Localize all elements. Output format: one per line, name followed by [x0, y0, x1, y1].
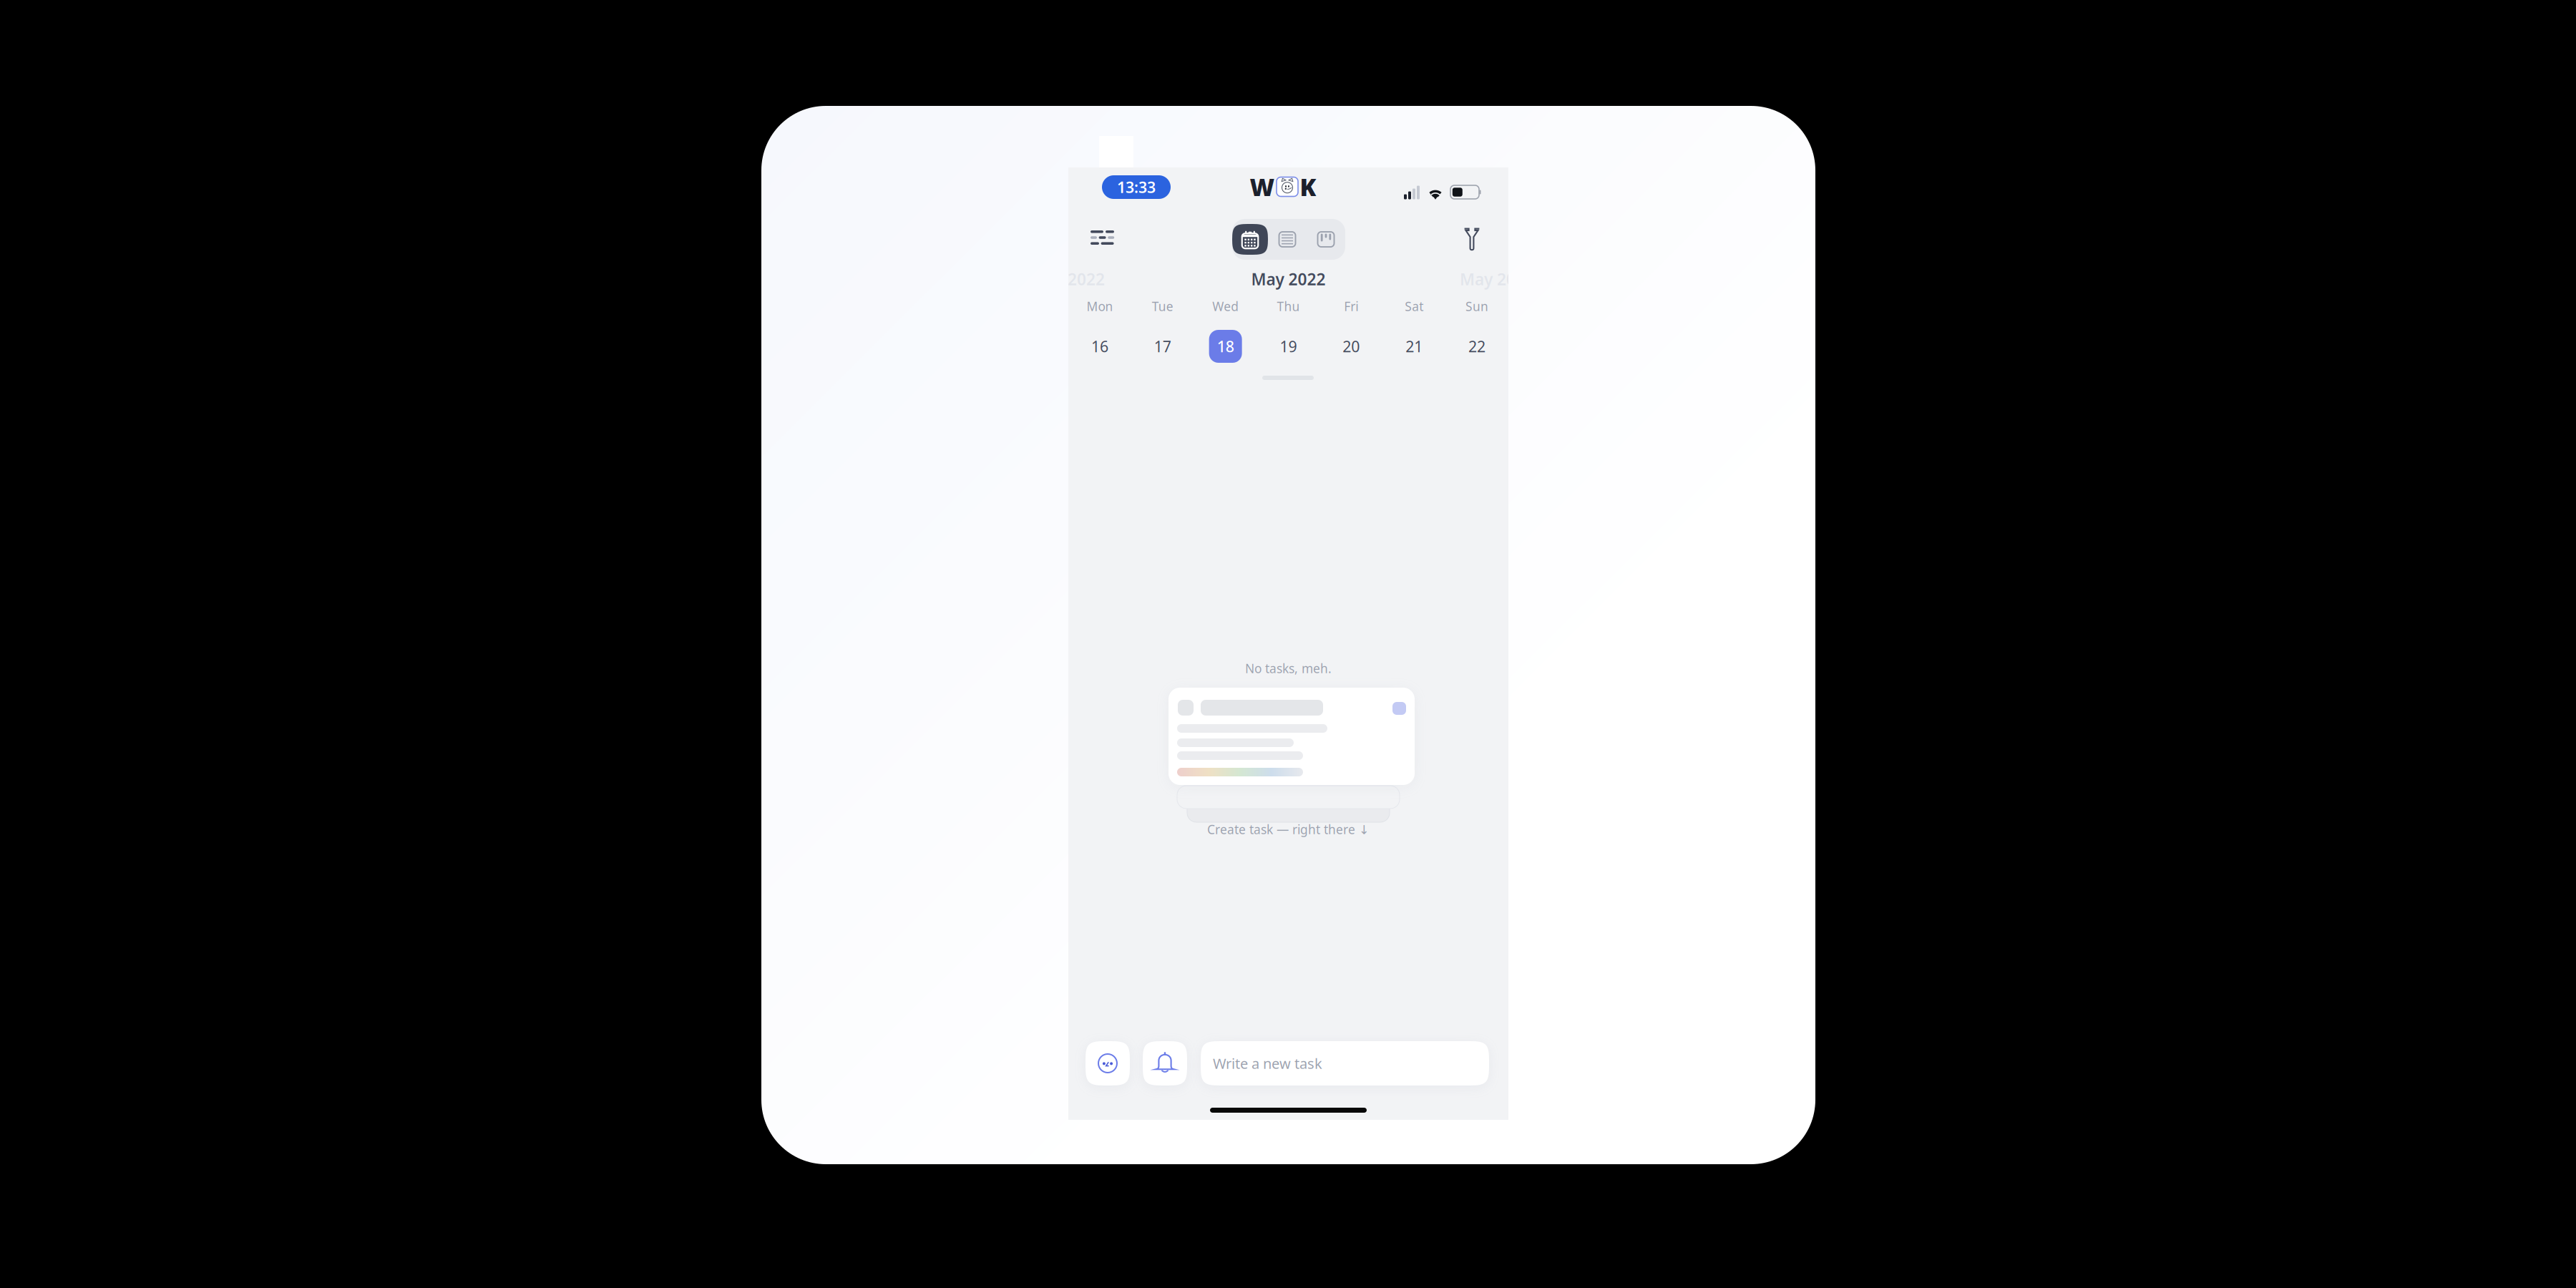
staticText: Mon	[1086, 298, 1113, 314]
button[interactable]: 18	[1194, 329, 1257, 364]
button[interactable]: 17	[1131, 329, 1194, 364]
button[interactable]: Sort and group	[1091, 228, 1116, 247]
staticText: Sat	[1405, 298, 1423, 314]
staticText: 16	[1091, 336, 1108, 356]
button[interactable]: Write a new task	[1201, 1041, 1489, 1085]
button[interactable]: List view	[1268, 224, 1307, 255]
staticText: No tasks, meh.	[1245, 660, 1332, 677]
staticText: Fri	[1344, 298, 1358, 314]
staticText: 19	[1280, 336, 1297, 356]
staticText: Thu	[1277, 298, 1300, 314]
button[interactable]: Board view	[1307, 224, 1345, 255]
button[interactable]: 19	[1257, 329, 1320, 364]
button[interactable]: 22	[1445, 329, 1508, 364]
button[interactable]: 16	[1068, 329, 1131, 364]
button[interactable]: 20	[1320, 329, 1383, 364]
staticText: April 2022	[1027, 268, 1105, 290]
staticText: Wed	[1212, 298, 1239, 314]
staticText: 20	[1343, 336, 1360, 356]
staticText: 17	[1154, 336, 1171, 356]
staticText: 21	[1405, 336, 1423, 356]
button[interactable]: 21	[1383, 329, 1446, 364]
staticText: 18	[1217, 336, 1234, 356]
staticText: Create task — right there ↓	[1207, 821, 1370, 838]
button[interactable]: Calendar view	[1232, 224, 1268, 255]
staticText: May 2022	[1251, 268, 1326, 290]
button[interactable]: Mood	[1085, 1041, 1130, 1085]
staticText: Tue	[1152, 298, 1173, 314]
staticText: Sun	[1466, 298, 1488, 314]
staticText: 13:33	[1117, 177, 1156, 197]
staticText: Write a new task	[1213, 1054, 1322, 1073]
staticText: W	[1250, 171, 1275, 203]
button[interactable]: Reminder	[1143, 1041, 1187, 1085]
staticText: May 2022	[1460, 268, 1534, 290]
staticText: 22	[1468, 336, 1486, 356]
staticText: K	[1300, 171, 1316, 203]
button[interactable]: Filter	[1463, 228, 1480, 252]
